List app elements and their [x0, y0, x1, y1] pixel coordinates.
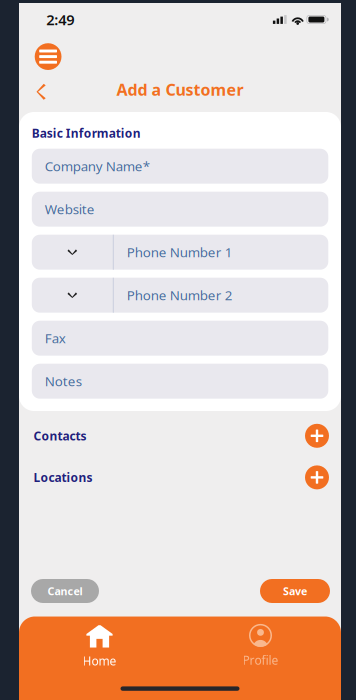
staticText: Basic Information [32, 125, 141, 141]
button[interactable]: Fax [32, 321, 328, 356]
button[interactable]: Profile [180, 616, 341, 678]
staticText: Home [82, 653, 116, 669]
button[interactable]: Add [305, 424, 329, 448]
button[interactable]: Home [19, 616, 180, 678]
button[interactable]: Back [28, 78, 54, 106]
button[interactable]: Notes [32, 364, 328, 399]
staticText: Cancel [47, 584, 82, 598]
button[interactable]: Cancel [31, 579, 99, 603]
button[interactable]: Contacts [33, 424, 86, 448]
staticText: Phone Number 1 [127, 243, 233, 261]
button[interactable]: Website [32, 192, 328, 227]
button[interactable]: Save [260, 579, 330, 603]
staticText: Contacts [33, 428, 86, 444]
button[interactable]: Company Name* [32, 149, 328, 184]
staticText: 2:49 [46, 10, 74, 29]
staticText: Notes [45, 372, 82, 390]
staticText: Add a Customer [116, 79, 243, 100]
button[interactable]: Locations [33, 465, 92, 489]
staticText: Website [45, 200, 95, 218]
button[interactable]: Phone Number 1 [32, 235, 328, 270]
staticText: Profile [242, 652, 278, 668]
staticText: Company Name* [45, 157, 150, 175]
staticText: Fax [45, 329, 66, 347]
staticText: Phone Number 2 [127, 286, 233, 304]
button[interactable]: Phone Number 2 [32, 278, 328, 313]
button[interactable]: Add [305, 465, 329, 489]
staticText: Locations [33, 469, 92, 485]
button[interactable]: Menu [33, 42, 63, 72]
staticText: Save [283, 584, 307, 598]
